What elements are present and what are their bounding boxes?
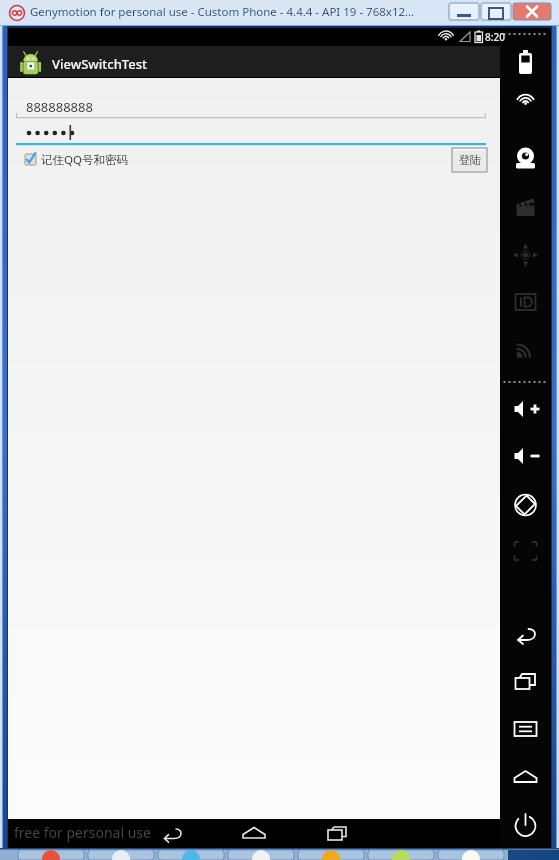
button[interactable] xyxy=(23,150,133,170)
staticText: 记住QQ号和密码 xyxy=(41,152,128,168)
button[interactable]: Recent apps xyxy=(500,663,551,699)
button[interactable]: Volume down xyxy=(500,438,551,474)
button[interactable]: Back xyxy=(500,616,551,652)
button[interactable]: Taskbar item 4 xyxy=(228,850,294,860)
button[interactable]: Taskbar item 7 xyxy=(438,850,504,860)
button[interactable]: Power xyxy=(500,808,551,844)
button[interactable]: Taskbar item 5 xyxy=(298,850,364,860)
button[interactable]: Recent apps xyxy=(319,819,357,848)
button[interactable]: Taskbar item 1 xyxy=(18,850,84,860)
button[interactable]: Minimize xyxy=(449,3,479,20)
button[interactable]: Back xyxy=(152,819,190,848)
button[interactable]: GPS xyxy=(500,90,551,126)
staticText: 888888888 xyxy=(26,98,93,116)
button[interactable]: D-pad xyxy=(500,237,551,273)
staticText: free for personal use xyxy=(14,823,151,842)
staticText: ViewSwitchTest xyxy=(52,55,148,73)
staticText: Genymotion for personal use - Custom Pho… xyxy=(30,4,415,20)
button[interactable] xyxy=(452,148,487,172)
button[interactable]: Identifiers xyxy=(500,284,551,320)
button[interactable]: Password input xyxy=(16,120,486,145)
button[interactable]: Taskbar item 3 xyxy=(158,850,224,860)
button[interactable]: Volume up xyxy=(500,391,551,427)
button[interactable]: Close xyxy=(513,3,551,20)
button[interactable]: Maximize xyxy=(481,3,511,20)
button[interactable]: Rotate screen xyxy=(500,487,551,523)
button[interactable]: Home xyxy=(500,759,551,795)
button[interactable]: Camera xyxy=(500,140,551,176)
staticText: 8:20 xyxy=(485,30,505,44)
button[interactable]: Taskbar item 2 xyxy=(88,850,154,860)
button[interactable]: QQ number input xyxy=(16,92,486,118)
staticText: 登陆 xyxy=(459,153,481,167)
button[interactable]: Video recording xyxy=(500,189,551,225)
button[interactable]: Battery xyxy=(500,44,551,80)
button[interactable]: Home xyxy=(236,819,274,848)
button[interactable]: Scale 1:1 xyxy=(500,533,551,569)
button[interactable]: Network xyxy=(500,332,551,368)
button[interactable]: Menu xyxy=(500,711,551,747)
button[interactable]: Taskbar item 6 xyxy=(368,850,434,860)
